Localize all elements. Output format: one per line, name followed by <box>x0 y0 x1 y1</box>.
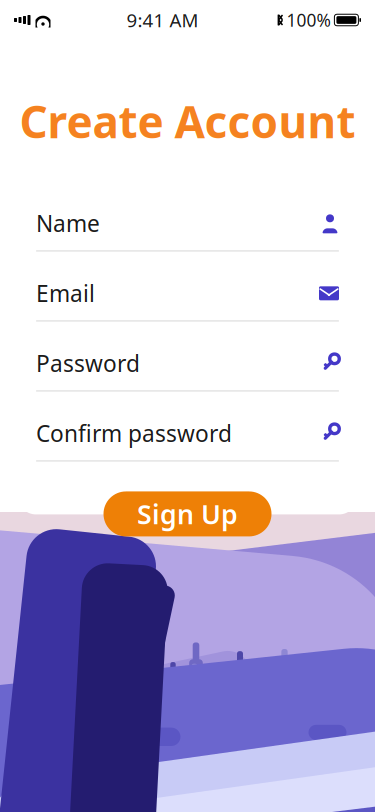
staticText: Create Account <box>19 92 355 150</box>
button[interactable]: Email <box>36 264 339 334</box>
staticText: 100% <box>286 8 330 31</box>
button[interactable]: Password <box>36 334 339 404</box>
button[interactable]: Name <box>36 194 339 264</box>
button[interactable]: Confirm password <box>36 404 339 474</box>
staticText: 9:41 AM <box>126 8 198 32</box>
staticText: Confirm password <box>36 418 232 448</box>
staticText: Name <box>36 208 100 238</box>
staticText: Password <box>36 348 140 378</box>
staticText: Email <box>36 278 95 308</box>
staticText: Sign Up <box>137 496 238 532</box>
button[interactable]: Sign Up <box>103 491 271 536</box>
